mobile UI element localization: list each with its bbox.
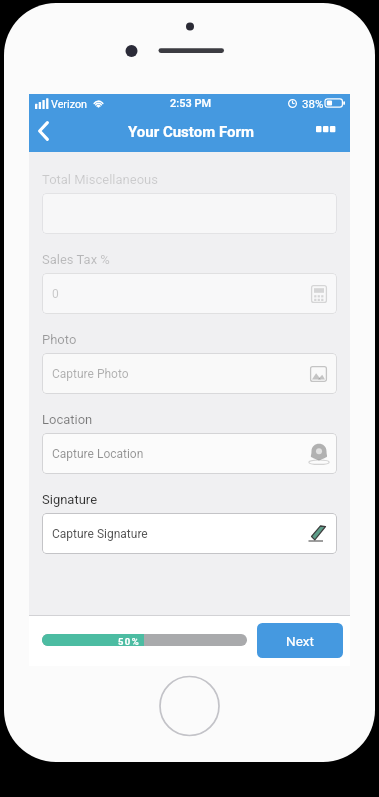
button[interactable]: Capture Photo (42, 353, 337, 394)
staticText: Your Custom Form (128, 123, 254, 141)
button[interactable] (42, 193, 337, 234)
staticText: Capture Location (52, 447, 144, 461)
button[interactable]: More options (316, 116, 352, 146)
staticText: Capture Signature (52, 527, 148, 541)
staticText: Sales Tax % (42, 252, 110, 267)
staticText: Signature (42, 492, 98, 507)
staticText: 38% (302, 97, 324, 110)
button[interactable]: Progress 50 percent (42, 634, 247, 646)
button[interactable]: Next (257, 623, 343, 658)
staticText: Verizon (51, 98, 88, 111)
button[interactable]: Capture Signature (42, 513, 337, 554)
staticText: Total Miscellaneous (42, 172, 158, 187)
staticText: 50% (118, 636, 141, 646)
staticText: Next (286, 633, 314, 649)
button[interactable]: Back (29, 116, 53, 146)
staticText: 2:53 PM (170, 97, 212, 110)
button[interactable]: 0 (42, 273, 337, 314)
staticText: Photo (42, 332, 77, 347)
button[interactable]: Capture Location (42, 433, 337, 474)
staticText: 0 (52, 287, 59, 301)
staticText: Capture Photo (52, 367, 129, 381)
staticText: Location (42, 412, 93, 427)
